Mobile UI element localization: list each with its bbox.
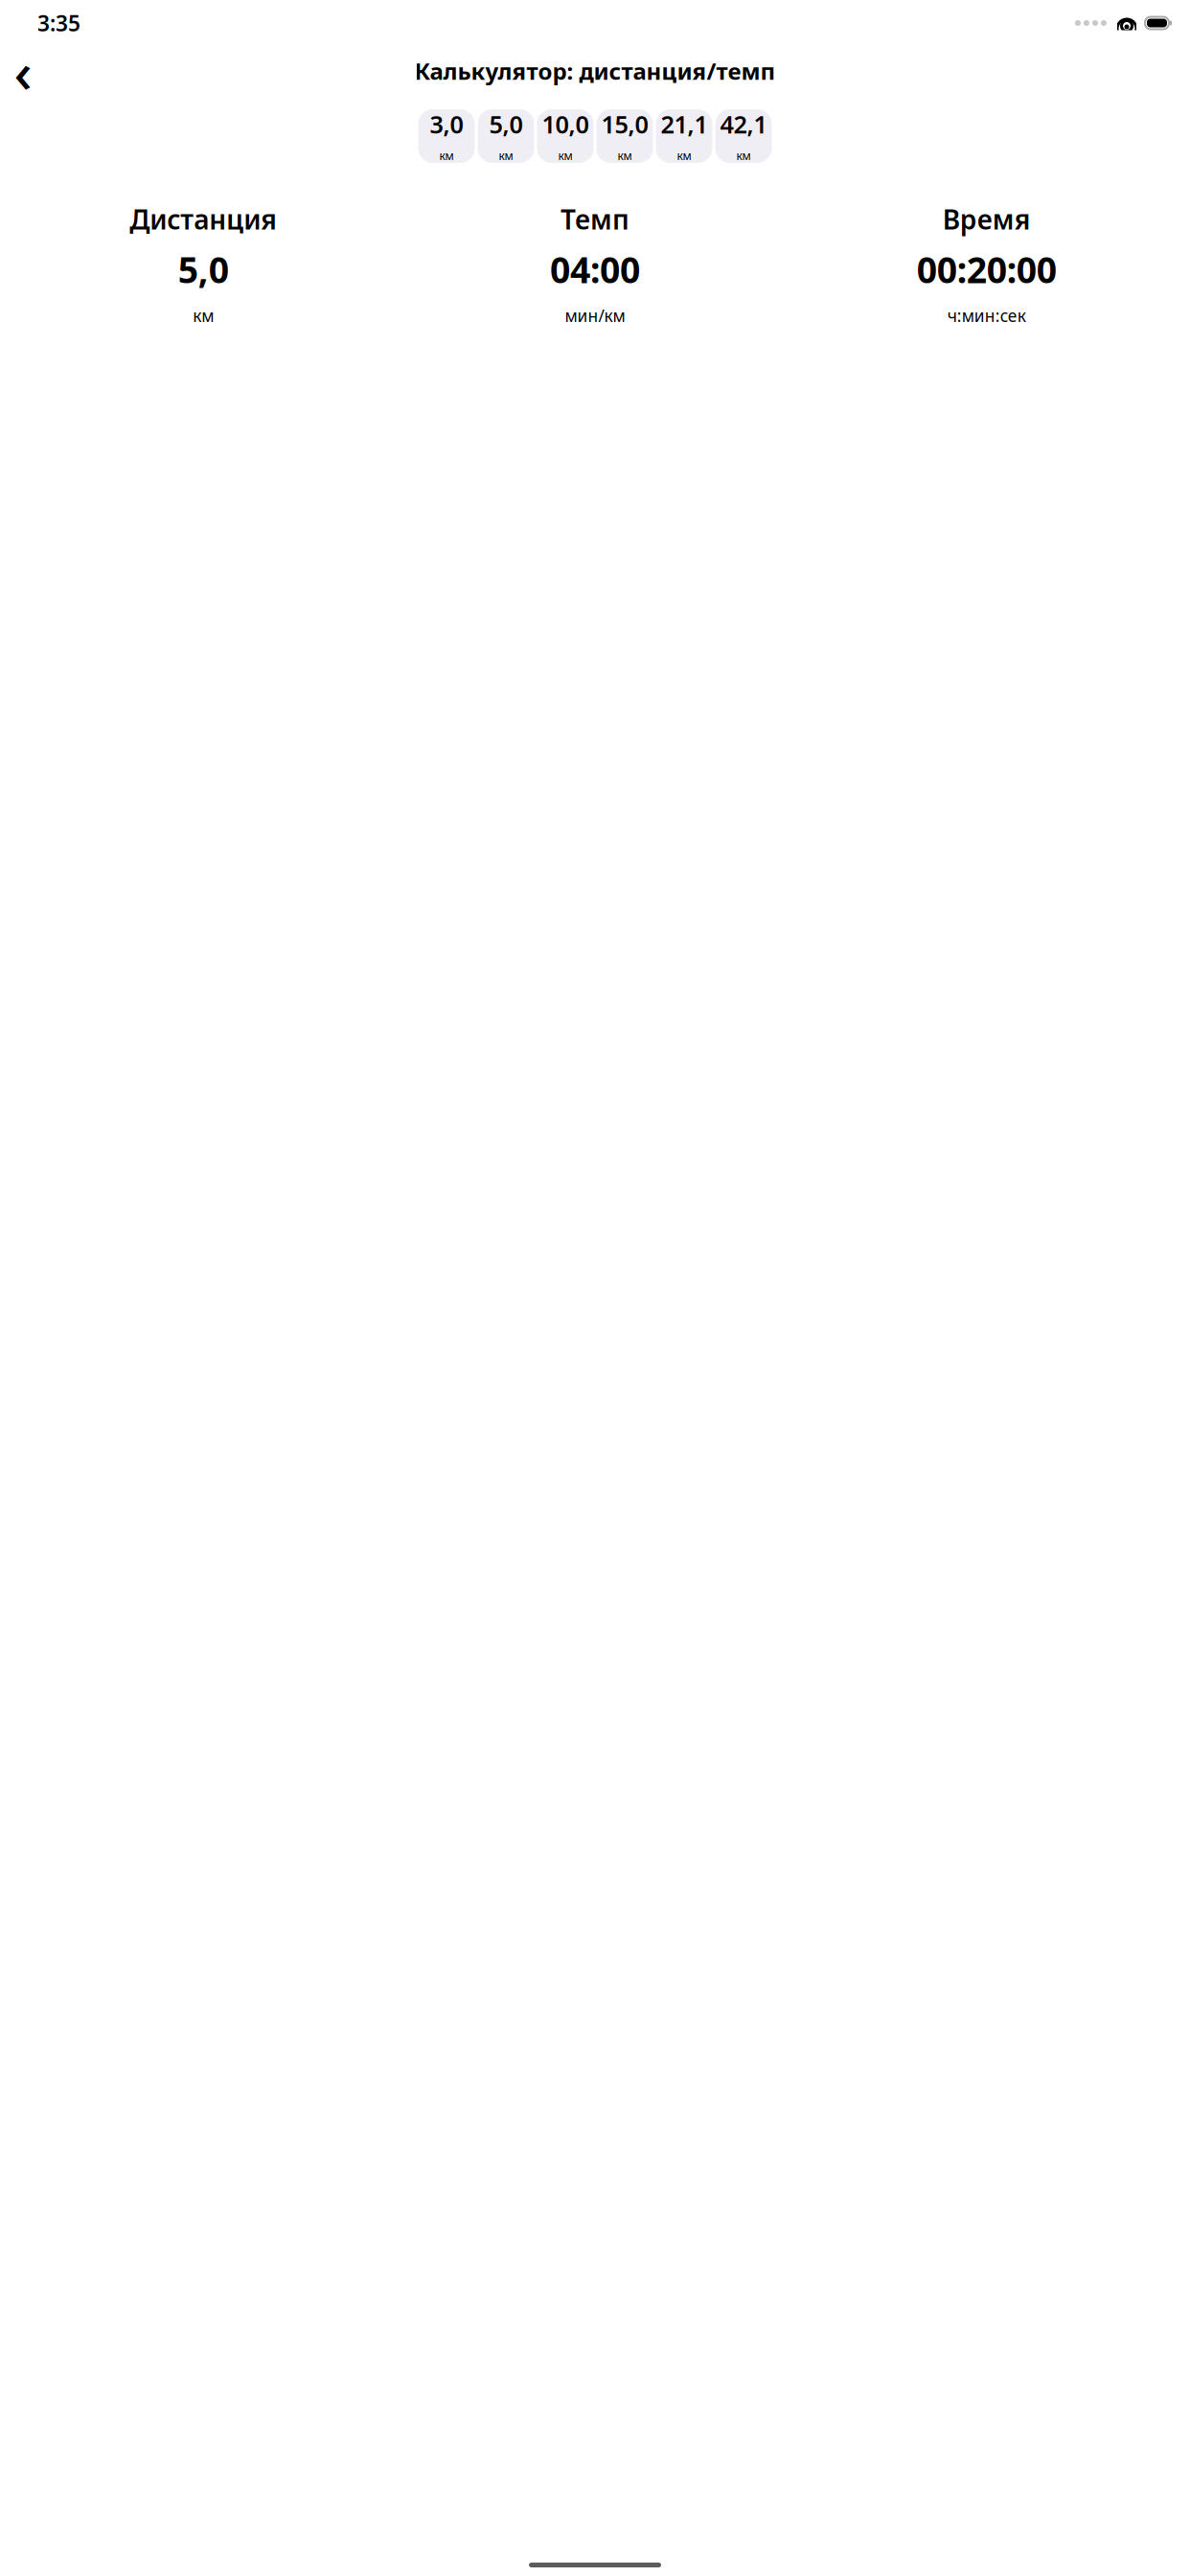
staticText: 04:00: [550, 246, 640, 293]
staticText: мин/км: [565, 305, 625, 327]
staticText: км: [736, 148, 751, 163]
staticText: км: [618, 148, 632, 163]
staticText: 15,0: [601, 108, 648, 140]
staticText: ч:мин:сек: [947, 305, 1026, 327]
staticText: км: [558, 148, 572, 163]
button[interactable]: 5,0: [478, 109, 534, 163]
staticText: км: [677, 148, 691, 163]
staticText: 5,0: [178, 246, 229, 293]
staticText: Калькулятор: дистанция/темп: [414, 56, 776, 86]
staticText: 5,0: [489, 108, 523, 140]
staticText: Дистанция: [130, 201, 277, 237]
staticText: 21,1: [661, 108, 708, 140]
button[interactable]: 15,0: [596, 109, 653, 163]
staticText: 3:35: [37, 9, 80, 37]
staticText: ‹: [14, 34, 32, 108]
staticText: Время: [943, 201, 1031, 237]
staticText: км: [193, 305, 214, 327]
staticText: км: [439, 148, 454, 163]
button[interactable]: 10,0: [537, 109, 594, 163]
staticText: 3,0: [430, 108, 463, 140]
button[interactable]: 21,1: [656, 109, 712, 163]
button[interactable]: Назад: [2, 50, 44, 92]
staticText: Темп: [561, 201, 629, 237]
staticText: км: [499, 148, 513, 163]
staticText: 00:20:00: [917, 246, 1057, 293]
staticText: 10,0: [542, 108, 589, 140]
button[interactable]: 3,0: [418, 109, 475, 163]
staticText: 42,1: [720, 108, 767, 140]
button[interactable]: 42,1: [715, 109, 772, 163]
